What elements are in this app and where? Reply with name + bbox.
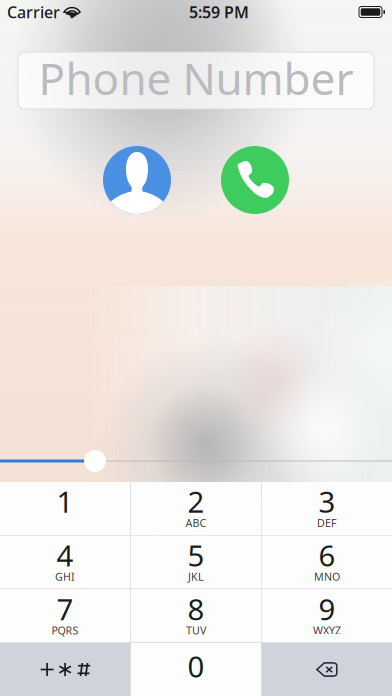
staticText: 5:59 PM <box>189 1 249 23</box>
button[interactable]: 4 <box>0 536 130 589</box>
button[interactable]: Contacts <box>103 146 171 214</box>
staticText: 9 <box>318 589 335 628</box>
staticText: GHI <box>55 570 75 584</box>
button[interactable]: 9 <box>262 589 392 642</box>
staticText: 0 <box>187 646 204 685</box>
button[interactable]: 3 <box>262 482 392 535</box>
button[interactable]: Call <box>221 146 289 214</box>
staticText: 6 <box>318 536 335 575</box>
button[interactable]: 2 <box>131 482 261 535</box>
button[interactable]: 6 <box>262 536 392 589</box>
staticText: WXYZ <box>313 623 341 637</box>
staticText: 1 <box>57 482 74 521</box>
staticText: 2 <box>187 482 204 521</box>
button[interactable] <box>0 643 130 696</box>
button[interactable]: Delete <box>262 643 392 696</box>
staticText: Phone Number <box>38 49 353 107</box>
staticText: MNO <box>314 570 340 584</box>
staticText: ABC <box>185 516 206 530</box>
staticText: DEF <box>317 516 337 530</box>
staticText: PQRS <box>52 623 79 637</box>
staticText: Carrier <box>7 1 60 23</box>
staticText: 4 <box>57 536 74 575</box>
button[interactable]: 7 <box>0 589 130 642</box>
staticText: TUV <box>186 623 206 637</box>
button[interactable]: 0 <box>131 643 261 696</box>
staticText: 8 <box>187 589 204 628</box>
button[interactable]: 5 <box>131 536 261 589</box>
staticText: JKL <box>188 570 204 584</box>
button[interactable]: 1 <box>0 482 130 535</box>
staticText: 7 <box>57 589 74 628</box>
button[interactable]: 8 <box>131 589 261 642</box>
staticText: 3 <box>318 482 335 521</box>
staticText: 5 <box>187 536 204 575</box>
